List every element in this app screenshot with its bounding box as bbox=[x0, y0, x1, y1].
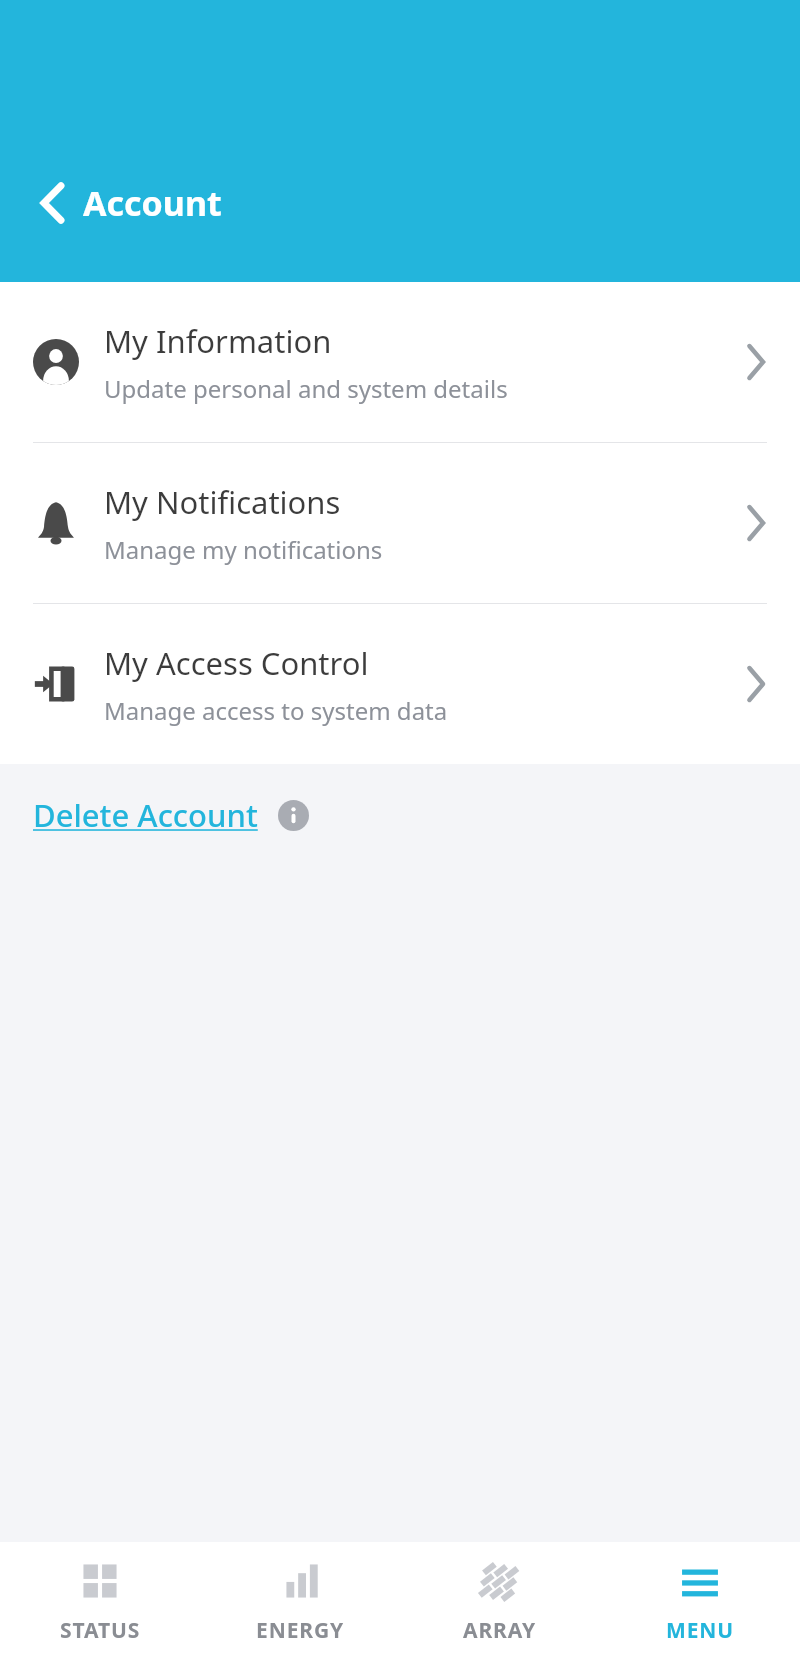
button[interactable]: My Notifications bbox=[0, 443, 800, 603]
button[interactable]: My Information bbox=[0, 282, 800, 442]
button[interactable]: STATUS bbox=[0, 1550, 200, 1653]
staticText: ARRAY bbox=[463, 1616, 537, 1645]
button[interactable]: Back bbox=[34, 174, 228, 232]
other: Information bbox=[278, 800, 309, 831]
staticText: My Access Control bbox=[104, 642, 369, 684]
button[interactable]: Delete Account bbox=[31, 788, 311, 842]
staticText: MENU bbox=[666, 1616, 735, 1645]
button[interactable]: ARRAY bbox=[400, 1550, 600, 1653]
staticText: Manage access to system data bbox=[104, 694, 448, 727]
staticText: Account bbox=[83, 180, 222, 226]
staticText: Manage my notifications bbox=[104, 533, 383, 566]
button[interactable]: My Access Control bbox=[0, 604, 800, 764]
button[interactable]: ENERGY bbox=[200, 1550, 400, 1653]
button[interactable]: MENU bbox=[600, 1550, 800, 1653]
staticText: My Information bbox=[104, 320, 332, 362]
staticText: Update personal and system details bbox=[104, 372, 508, 405]
staticText: My Notifications bbox=[104, 481, 341, 523]
staticText: Delete Account bbox=[33, 794, 258, 836]
staticText: STATUS bbox=[60, 1616, 141, 1645]
other: Back bbox=[40, 182, 65, 224]
staticText: ENERGY bbox=[256, 1616, 345, 1645]
